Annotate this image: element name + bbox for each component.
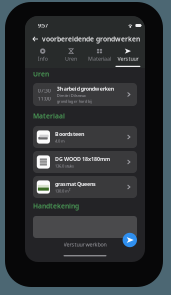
button[interactable]: Terug xyxy=(29,34,42,44)
staticText: 9:57 xyxy=(38,22,48,29)
staticText: Info xyxy=(38,55,48,62)
staticText: Dimitri Dilsneux xyxy=(57,93,86,98)
button[interactable]: Uren xyxy=(57,48,85,67)
button[interactable]: Materiaal xyxy=(85,48,114,67)
staticText: Uren xyxy=(65,55,77,62)
staticText: Verstuur xyxy=(117,55,138,62)
button[interactable]: Info xyxy=(28,48,57,67)
button[interactable]: Boordsteen xyxy=(33,126,137,148)
staticText: Materiaal xyxy=(88,55,111,62)
staticText: Materiaal xyxy=(33,112,65,120)
button[interactable]: Verstuur xyxy=(114,48,142,67)
button[interactable]: Verstuur werkbon xyxy=(33,241,137,248)
staticText: Verstuur werkbon xyxy=(63,241,106,248)
staticText: DG WOOD 18x180mm xyxy=(55,155,110,163)
staticText: grond lag er hard bij xyxy=(57,99,92,104)
staticText: Boordsteen xyxy=(55,130,84,138)
button[interactable]: 07:30 xyxy=(33,83,137,106)
button[interactable]: Verstuur werkbon xyxy=(123,233,137,247)
button[interactable]: DG WOOD 18x180mm xyxy=(33,151,137,173)
staticText: 11:00 xyxy=(38,95,51,102)
staticText: 07:30 xyxy=(38,87,51,94)
button[interactable]: grasmat Queens xyxy=(33,176,137,198)
staticText: 136.0 stuks xyxy=(55,163,74,168)
staticText: Handtekening xyxy=(33,202,79,210)
staticText: voorbereidende grondwerken xyxy=(42,35,140,43)
staticText: Uren xyxy=(33,70,49,78)
staticText: grasmat Queens xyxy=(55,180,96,188)
staticText: 4.0 m xyxy=(55,138,65,143)
staticText: 3h arbeid grondwerken xyxy=(57,85,114,92)
staticText: 130.0 m² xyxy=(55,188,70,193)
